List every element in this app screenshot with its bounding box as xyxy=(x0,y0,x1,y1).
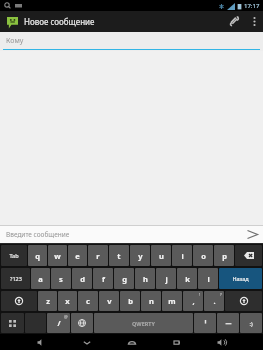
button[interactable]: Shift xyxy=(1,291,37,311)
staticText: j xyxy=(165,274,168,284)
staticText: Кому xyxy=(6,36,24,46)
button[interactable]: s xyxy=(51,268,71,289)
staticText: QWERTY xyxy=(132,320,155,327)
button[interactable]: Home xyxy=(122,334,142,350)
staticText: ! xyxy=(199,292,201,297)
staticText: Новое сообщение xyxy=(24,16,95,27)
staticText: l xyxy=(207,274,210,284)
button[interactable]: More options xyxy=(245,11,263,32)
staticText: a xyxy=(38,274,43,284)
button[interactable]: o xyxy=(193,245,213,266)
staticText: , xyxy=(192,296,195,306)
staticText: f xyxy=(102,274,105,284)
button[interactable]: d xyxy=(72,268,92,289)
button[interactable]: Dash xyxy=(217,313,239,333)
staticText: d xyxy=(80,274,85,284)
staticText: q xyxy=(35,251,40,261)
staticText: x xyxy=(65,296,70,306)
button[interactable]: b xyxy=(120,291,140,311)
staticText: b xyxy=(128,296,133,306)
staticText: p xyxy=(222,251,227,261)
button[interactable]: Кому xyxy=(6,36,263,46)
button[interactable]: Delete xyxy=(235,245,262,266)
button[interactable]: Назад xyxy=(219,268,262,289)
button[interactable]: r xyxy=(88,245,108,266)
button[interactable]: @ xyxy=(47,313,70,333)
button[interactable]: Recents xyxy=(167,334,187,350)
button[interactable]: Введите сообщение xyxy=(6,230,241,239)
staticText: k xyxy=(185,274,190,284)
button[interactable]: Change keyboard xyxy=(71,313,93,333)
button[interactable]: ! xyxy=(183,291,203,311)
staticText: i xyxy=(181,251,184,261)
staticText: / xyxy=(57,318,61,328)
button[interactable]: Quote xyxy=(194,313,216,333)
staticText: :) xyxy=(249,320,253,327)
staticText: c xyxy=(86,296,90,306)
button[interactable]: Up xyxy=(4,14,20,30)
staticText: . xyxy=(213,296,216,306)
button[interactable]: g xyxy=(114,268,134,289)
button[interactable]: m xyxy=(162,291,182,311)
staticText: Tab xyxy=(9,252,19,259)
button[interactable]: Volume down xyxy=(32,334,52,350)
button[interactable]: e xyxy=(68,245,87,266)
button[interactable]: ? xyxy=(204,291,224,311)
staticText: ? xyxy=(220,292,222,297)
staticText: e xyxy=(75,251,80,261)
button[interactable]: y xyxy=(130,245,150,266)
button[interactable]: u xyxy=(151,245,171,266)
staticText: z xyxy=(46,296,50,306)
staticText: t xyxy=(117,251,121,261)
button[interactable]: QWERTY xyxy=(94,313,193,333)
staticText: n xyxy=(149,296,154,306)
staticText: m xyxy=(168,296,176,306)
staticText: v xyxy=(107,296,112,306)
staticText: h xyxy=(143,274,148,284)
button[interactable]: :) xyxy=(240,313,262,333)
button[interactable]: Tab xyxy=(1,245,27,266)
button[interactable]: k xyxy=(177,268,197,289)
staticText: w xyxy=(54,251,61,261)
button[interactable]: Shift xyxy=(225,291,262,311)
staticText: y xyxy=(138,251,143,261)
button[interactable]: Hide keyboard xyxy=(77,334,97,350)
button[interactable]: j xyxy=(156,268,176,289)
button[interactable]: Control xyxy=(1,313,24,333)
button[interactable]: Attach xyxy=(223,11,245,32)
staticText: ?123 xyxy=(10,275,22,282)
staticText: g xyxy=(122,274,127,284)
staticText: @ xyxy=(64,314,68,319)
button[interactable]: a xyxy=(31,268,50,289)
staticText: o xyxy=(201,251,206,261)
button[interactable]: Send xyxy=(241,226,263,243)
button[interactable]: x xyxy=(58,291,77,311)
button[interactable]: n xyxy=(141,291,161,311)
button[interactable]: v xyxy=(99,291,119,311)
button[interactable]: z xyxy=(38,291,57,311)
staticText: r xyxy=(96,251,100,261)
staticText: Назад xyxy=(232,275,249,282)
button[interactable]: h xyxy=(135,268,155,289)
staticText: 17:17 xyxy=(244,2,260,10)
button[interactable]: l xyxy=(198,268,218,289)
button[interactable]: ?123 xyxy=(1,268,30,289)
staticText: u xyxy=(159,251,164,261)
button[interactable]: p xyxy=(214,245,234,266)
button[interactable]: t xyxy=(109,245,129,266)
button[interactable]: w xyxy=(48,245,67,266)
button[interactable]: q xyxy=(28,245,47,266)
staticText: s xyxy=(59,274,63,284)
staticText: Введите сообщение xyxy=(6,230,70,239)
button[interactable]: c xyxy=(78,291,98,311)
button[interactable]: Volume up xyxy=(212,334,232,350)
button[interactable]: f xyxy=(93,268,113,289)
button[interactable]: i xyxy=(172,245,192,266)
